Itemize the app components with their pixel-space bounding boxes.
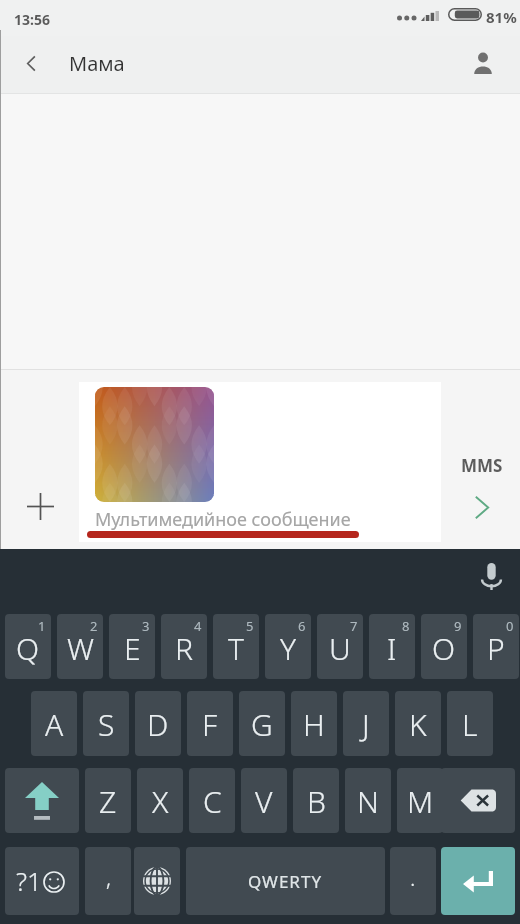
staticText: X [152, 781, 169, 822]
staticText: T [228, 628, 244, 669]
staticText: , [106, 862, 111, 892]
staticText: M [407, 781, 434, 822]
button[interactable]: C [189, 768, 235, 833]
button[interactable]: F [187, 691, 233, 756]
button[interactable]: E [109, 614, 155, 679]
staticText: F [202, 704, 218, 745]
staticText: 6 [298, 617, 306, 635]
button[interactable]: , [85, 847, 131, 915]
staticText: A [45, 704, 64, 745]
staticText: B [307, 781, 326, 822]
staticText: 5 [246, 617, 254, 635]
staticText: N [357, 781, 379, 822]
button[interactable]: K [395, 691, 441, 756]
button[interactable]: R [161, 614, 207, 679]
staticText: 9 [454, 617, 462, 635]
staticText: R [175, 628, 193, 669]
button[interactable]: Back [8, 36, 54, 90]
staticText: S [98, 704, 115, 745]
staticText: 2 [90, 617, 98, 635]
staticText: ?1 [16, 863, 42, 898]
staticText: Мультимедийное сообщение [95, 507, 351, 532]
staticText: QWERTY [248, 870, 323, 893]
staticText: D [147, 704, 169, 745]
staticText: 1 [38, 617, 46, 635]
staticText: 3 [142, 617, 150, 635]
button[interactable]: Enter [441, 847, 515, 915]
button[interactable]: Contact details [455, 36, 510, 90]
staticText: K [409, 704, 427, 745]
staticText: V [255, 781, 273, 822]
button[interactable]: Shift [5, 768, 79, 833]
staticText: U [329, 628, 351, 669]
button[interactable]: X [137, 768, 183, 833]
button[interactable]: Мультимедийное сообщение [79, 382, 441, 542]
button[interactable]: Q [5, 614, 51, 679]
staticText: Z [99, 781, 117, 822]
staticText: L [462, 704, 478, 745]
button[interactable]: W [57, 614, 103, 679]
staticText: G [251, 704, 273, 745]
staticText: W [67, 628, 94, 669]
button[interactable]: L [447, 691, 493, 756]
staticText: P [487, 628, 505, 669]
staticText: 8 [402, 617, 410, 635]
staticText: 13:56 [14, 10, 50, 29]
button[interactable]: G [239, 691, 285, 756]
button[interactable]: P [473, 614, 519, 679]
button[interactable]: Z [85, 768, 131, 833]
button[interactable]: A [31, 691, 77, 756]
staticText: 4 [194, 617, 202, 635]
staticText: E [124, 628, 141, 669]
button[interactable]: Voice input [469, 554, 513, 598]
button[interactable]: V [241, 768, 287, 833]
staticText: Y [280, 628, 297, 669]
button[interactable]: Change language [134, 847, 180, 915]
button[interactable]: S [83, 691, 129, 756]
staticText: H [303, 704, 325, 745]
staticText: . [410, 862, 416, 892]
button[interactable]: D [135, 691, 181, 756]
staticText: O [432, 628, 456, 669]
button[interactable]: M [397, 768, 443, 833]
staticText: 7 [350, 617, 358, 635]
staticText: 0 [506, 617, 514, 635]
button[interactable]: U [317, 614, 363, 679]
button[interactable]: T [213, 614, 259, 679]
button[interactable]: Send [459, 484, 505, 530]
button[interactable]: H [291, 691, 337, 756]
button[interactable]: O [421, 614, 467, 679]
button[interactable]: N [345, 768, 391, 833]
button[interactable]: I [369, 614, 415, 679]
button[interactable]: Y [265, 614, 311, 679]
staticText: C [203, 781, 222, 822]
staticText: Q [16, 628, 40, 669]
staticText: J [362, 704, 370, 745]
button[interactable]: Backspace [441, 768, 515, 833]
button[interactable]: Symbols and emoji [5, 847, 79, 915]
staticText: Мама [69, 50, 125, 77]
button[interactable]: Add attachment [12, 478, 68, 534]
staticText: 81% [486, 7, 517, 27]
button[interactable]: J [343, 691, 389, 756]
button[interactable]: B [293, 768, 339, 833]
staticText: I [387, 628, 397, 669]
button[interactable]: . [390, 847, 436, 915]
staticText: MMS [461, 454, 503, 477]
button[interactable]: QWERTY [186, 847, 385, 915]
